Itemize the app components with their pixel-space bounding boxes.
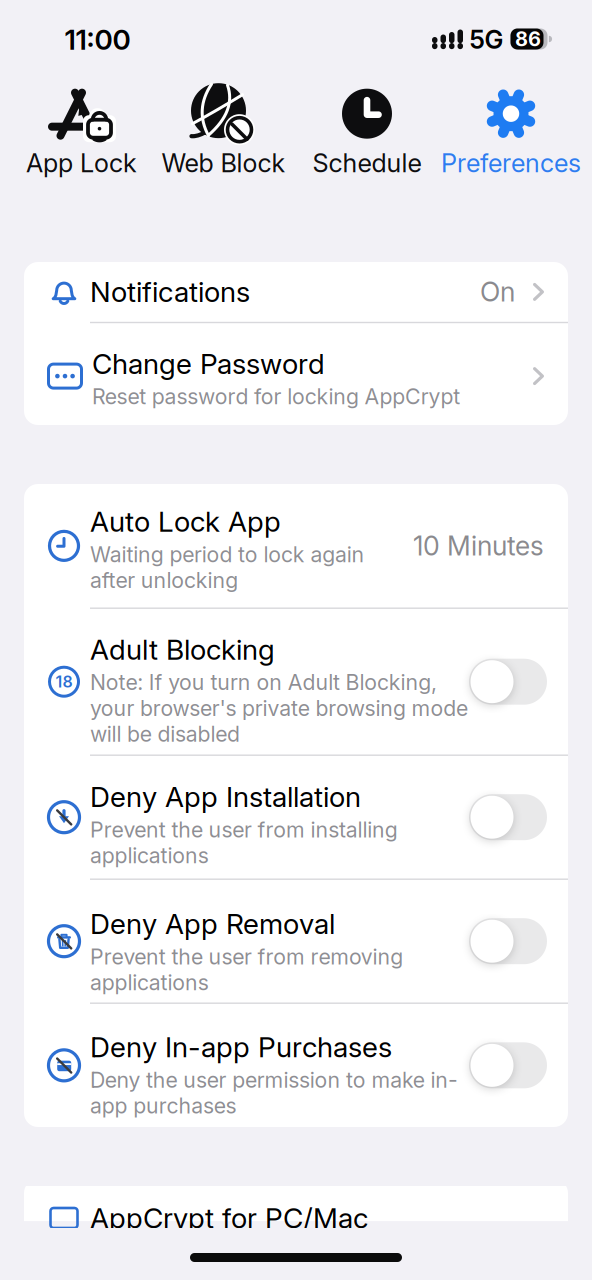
staticText: 18 xyxy=(55,672,72,691)
staticText: Preferences xyxy=(441,148,581,178)
staticText: 86 xyxy=(515,27,541,51)
button[interactable]: Adult Blocking xyxy=(469,659,547,705)
button[interactable]: Deny App Removal xyxy=(469,918,547,964)
staticText: Adult Blocking xyxy=(90,632,275,666)
staticText: Deny App Removal xyxy=(90,907,335,941)
staticText: Schedule xyxy=(312,148,421,178)
staticText: 10 Minutes xyxy=(413,530,544,562)
staticText: Prevent the user from removing applicati… xyxy=(90,944,403,995)
staticText: Waiting period to lock again after unloc… xyxy=(90,541,365,593)
button[interactable]: Schedule xyxy=(302,88,432,178)
staticText: AppCrypt for PC/Mac xyxy=(90,1201,368,1235)
button[interactable]: App Lock xyxy=(16,88,146,178)
button[interactable]: AppCrypt for PC/Mac xyxy=(24,1179,568,1235)
button[interactable]: Change Password xyxy=(24,323,568,425)
button[interactable]: Notifications xyxy=(24,262,568,322)
button[interactable]: Auto Lock App xyxy=(24,484,568,607)
button[interactable]: Web Block xyxy=(158,88,288,178)
button[interactable]: Preferences xyxy=(441,88,581,178)
staticText: Web Block xyxy=(161,148,285,178)
staticText: Auto Lock App xyxy=(90,505,281,538)
button[interactable]: Deny App Installation xyxy=(469,794,547,840)
staticText: Deny In-app Purchases xyxy=(90,1030,392,1064)
staticText: 5G xyxy=(469,24,503,55)
staticText: On xyxy=(480,276,515,308)
staticText: Prevent the user from installing applica… xyxy=(90,817,398,868)
staticText: Change Password xyxy=(92,347,325,381)
button[interactable]: Deny In-app Purchases xyxy=(469,1042,547,1088)
staticText: 11:00 xyxy=(64,23,130,56)
staticText: Reset password for locking AppCrypt xyxy=(92,384,460,409)
staticText: Deny App Installation xyxy=(90,780,361,814)
staticText: App Lock xyxy=(26,148,137,178)
staticText: Deny the user permission to make in- app… xyxy=(90,1067,458,1119)
staticText: Note: If you turn on Adult Blocking, you… xyxy=(90,669,468,747)
staticText: Notifications xyxy=(90,275,250,309)
